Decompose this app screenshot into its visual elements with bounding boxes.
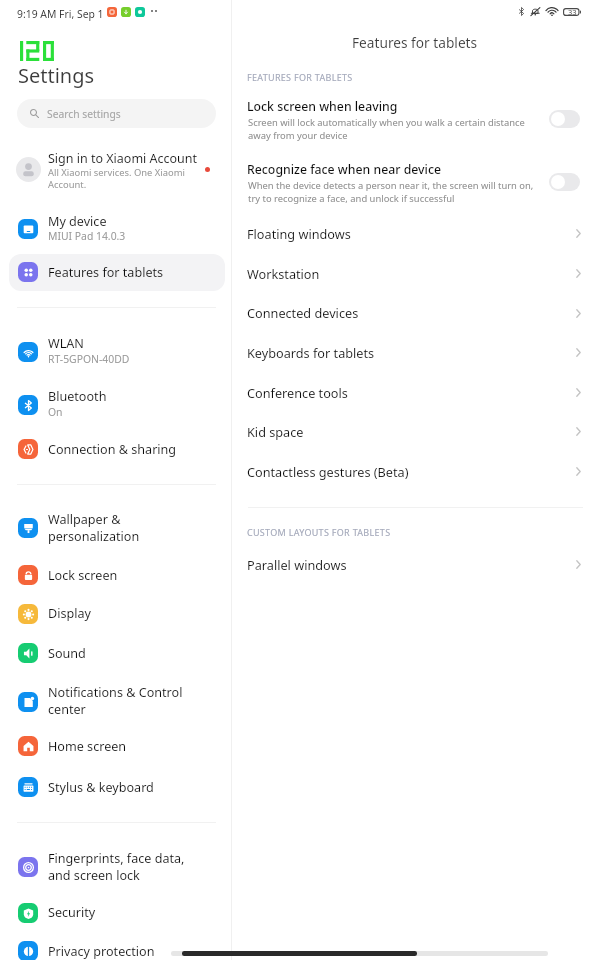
staticText: Screen will lock automatically when you … — [248, 116, 525, 142]
staticText: WLAN — [48, 335, 84, 352]
staticText: Workstation — [247, 265, 320, 282]
button[interactable] — [9, 595, 225, 632]
button[interactable] — [9, 769, 225, 806]
button[interactable] — [9, 933, 225, 960]
button[interactable] — [9, 254, 225, 291]
button[interactable] — [9, 506, 225, 550]
button[interactable] — [9, 148, 225, 192]
staticText: Conference tools — [247, 384, 348, 401]
staticText: FEATURES FOR TABLETS — [247, 71, 353, 83]
button[interactable] — [232, 333, 600, 372]
staticText: Recognize face when near device — [247, 161, 442, 178]
staticText: Contactless gestures (Beta) — [247, 463, 409, 480]
staticText: 9:19 AM Fri, Sep 1 — [17, 7, 104, 21]
button[interactable] — [232, 214, 600, 253]
staticText: Search settings — [47, 107, 121, 121]
button[interactable] — [232, 452, 600, 491]
button[interactable] — [9, 680, 225, 724]
staticText: Settings — [18, 62, 95, 89]
staticText: Sign in to Xiaomi Account — [48, 150, 198, 167]
button[interactable] — [9, 383, 225, 427]
staticText: Features for tablets — [352, 33, 478, 52]
button[interactable] — [232, 92, 600, 150]
staticText: Display — [48, 605, 91, 622]
button[interactable] — [9, 634, 225, 671]
staticText: CUSTOM LAYOUTS FOR TABLETS — [247, 526, 391, 538]
staticText: My device — [48, 213, 107, 230]
staticText: Wallpaper & personalization — [48, 511, 140, 544]
staticText: 33 — [568, 7, 577, 15]
staticText: Notifications & Control center — [48, 684, 183, 717]
button[interactable] — [9, 330, 225, 374]
staticText: RT-5GPON-40DD — [48, 352, 130, 366]
staticText: Keyboards for tablets — [247, 344, 375, 361]
button[interactable] — [9, 728, 225, 765]
button[interactable] — [9, 430, 225, 467]
button[interactable] — [232, 412, 600, 451]
staticText: Fingerprints, face data, and screen lock — [48, 850, 185, 883]
staticText: Home screen — [48, 738, 127, 755]
staticText: Connected devices — [247, 304, 359, 321]
staticText: All Xiaomi services. One Xiaomi Account. — [48, 166, 185, 191]
staticText: Privacy protection — [48, 943, 155, 960]
staticText: On — [48, 405, 63, 419]
staticText: Lock screen — [48, 567, 118, 584]
staticText: Floating windows — [247, 225, 351, 242]
staticText: Lock screen when leaving — [247, 98, 398, 115]
button[interactable] — [9, 207, 225, 251]
button[interactable] — [232, 155, 600, 213]
button[interactable] — [9, 894, 225, 931]
staticText: Connection & sharing — [48, 441, 177, 458]
button[interactable]: Search settings — [17, 99, 216, 128]
button[interactable]: Toggle Lock screen when leaving — [549, 110, 580, 128]
staticText: Bluetooth — [48, 388, 107, 405]
button[interactable] — [9, 556, 225, 593]
staticText: Security — [48, 904, 96, 921]
staticText: Stylus & keyboard — [48, 779, 154, 796]
staticText: Kid space — [247, 423, 304, 440]
button[interactable] — [232, 293, 600, 332]
button[interactable] — [232, 545, 600, 584]
staticText: MIUI Pad 14.0.3 — [48, 229, 126, 243]
button[interactable] — [232, 373, 600, 412]
staticText: Sound — [48, 645, 86, 662]
button[interactable]: Toggle Recognize face when near device — [549, 173, 580, 191]
button[interactable] — [232, 254, 600, 293]
staticText: Features for tablets — [48, 264, 164, 281]
button[interactable] — [9, 845, 225, 889]
staticText: When the device detects a person near it… — [248, 179, 534, 205]
staticText: Parallel windows — [247, 556, 347, 573]
